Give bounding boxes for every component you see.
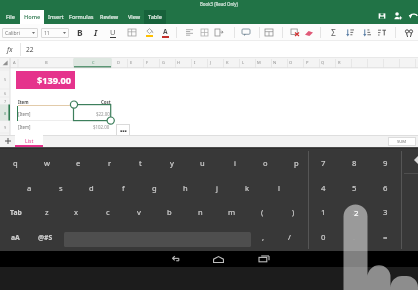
button[interactable]: v — [123, 200, 154, 224]
button[interactable]: Filter — [375, 24, 389, 41]
button[interactable]: Clear — [288, 24, 302, 41]
button[interactable]: j — [201, 176, 232, 200]
button[interactable]: ( — [247, 200, 278, 224]
button[interactable]: 5 — [339, 176, 370, 200]
button[interactable]: y — [156, 151, 187, 175]
button[interactable]: e — [63, 151, 94, 175]
button[interactable]: Σ — [326, 24, 340, 41]
button[interactable]: L — [235, 58, 251, 68]
button[interactable]: z — [31, 200, 62, 224]
button[interactable]: Font color — [158, 24, 172, 41]
button[interactable]: k — [232, 176, 263, 200]
button[interactable]: 8 — [339, 151, 370, 175]
button[interactable]: F — [139, 58, 155, 68]
button[interactable]: $139.00 — [16, 71, 75, 89]
button[interactable]: m — [216, 200, 247, 224]
button[interactable]: A — [10, 58, 18, 68]
button[interactable]: t — [125, 151, 156, 175]
button[interactable]: Backspace — [402, 151, 418, 173]
button[interactable]: Fill color — [142, 24, 156, 41]
button[interactable]: List — [15, 135, 43, 147]
button[interactable]: Find — [402, 24, 416, 41]
button[interactable]: More options — [116, 124, 130, 137]
button[interactable]: 6 — [370, 176, 401, 200]
button[interactable]: x — [61, 200, 92, 224]
button[interactable]: SUM — [388, 137, 416, 146]
button[interactable]: Insert — [44, 10, 68, 24]
button[interactable]: 7 — [308, 151, 339, 175]
button[interactable]: Add sheet — [0, 135, 15, 147]
button[interactable]: D — [112, 58, 124, 68]
button[interactable]: Tab — [0, 200, 32, 224]
button[interactable]: 1 — [308, 200, 339, 224]
button[interactable]: . — [339, 225, 370, 249]
button[interactable]: 0 — [308, 225, 339, 249]
button[interactable]: c — [92, 200, 123, 224]
button[interactable]: aA — [1, 225, 29, 249]
button[interactable]: B — [73, 24, 87, 41]
button[interactable]: C — [74, 58, 112, 68]
button[interactable]: 9 — [370, 151, 401, 175]
button[interactable]: K — [219, 58, 235, 68]
button[interactable]: Function — [0, 41, 20, 58]
button[interactable]: Back — [163, 251, 187, 267]
button[interactable]: Sort ascending — [343, 24, 357, 41]
button[interactable]: u — [187, 151, 218, 175]
button[interactable]: 4 — [308, 176, 339, 200]
button[interactable]: Home — [20, 10, 44, 24]
button[interactable]: Merge cells — [212, 24, 226, 41]
button[interactable]: ) — [278, 200, 309, 224]
button[interactable]: s — [45, 176, 76, 200]
button[interactable]: Table — [144, 10, 166, 24]
button[interactable]: H — [171, 58, 187, 68]
button[interactable]: M — [251, 58, 267, 68]
button[interactable]: g — [139, 176, 170, 200]
button[interactable]: d — [76, 176, 107, 200]
button[interactable]: l — [263, 176, 294, 200]
button[interactable]: p — [281, 151, 312, 175]
button[interactable]: Comment — [239, 24, 253, 41]
button[interactable]: Share — [392, 10, 404, 22]
button[interactable]: I — [187, 58, 203, 68]
button[interactable]: View — [123, 10, 145, 24]
button[interactable]: w — [31, 151, 62, 175]
button[interactable]: Wrap text — [197, 24, 211, 41]
button[interactable]: I — [89, 24, 103, 41]
button[interactable]: Number format — [262, 24, 276, 41]
button[interactable]: Sort descending — [360, 24, 374, 41]
button[interactable]: n — [185, 200, 216, 224]
button[interactable]: O — [283, 58, 299, 68]
button[interactable]: Formulas — [67, 10, 96, 24]
button[interactable]: r — [94, 151, 125, 175]
button[interactable]: Review — [96, 10, 123, 24]
button[interactable]: @#S — [29, 225, 61, 249]
button[interactable]: G — [155, 58, 171, 68]
button[interactable]: Undo — [408, 10, 418, 22]
button[interactable]: , — [248, 225, 279, 249]
button[interactable]: / — [274, 225, 305, 249]
button[interactable]: Borders — [125, 24, 139, 41]
button[interactable]: Home — [206, 251, 230, 267]
button[interactable]: R — [331, 58, 347, 68]
button[interactable]: Align — [182, 24, 196, 41]
button[interactable]: Underline — [106, 24, 120, 41]
button[interactable]: Recents — [252, 251, 276, 267]
button[interactable]: 2 — [339, 200, 370, 224]
button[interactable]: i — [219, 151, 250, 175]
button[interactable]: o — [250, 151, 281, 175]
button[interactable]: E — [123, 58, 139, 68]
button[interactable]: N — [267, 58, 283, 68]
button[interactable]: P — [299, 58, 315, 68]
button[interactable]: Save — [376, 10, 388, 22]
button[interactable]: Q — [315, 58, 331, 68]
button[interactable]: a — [14, 176, 45, 200]
button[interactable]: J — [203, 58, 219, 68]
button[interactable]: q — [0, 151, 31, 175]
button[interactable]: File — [0, 10, 20, 24]
button[interactable]: Calibri — [2, 28, 38, 38]
button[interactable]: B — [18, 58, 74, 68]
button[interactable]: h — [170, 176, 201, 200]
button[interactable]: 3 — [370, 200, 401, 224]
button[interactable]: b — [154, 200, 185, 224]
